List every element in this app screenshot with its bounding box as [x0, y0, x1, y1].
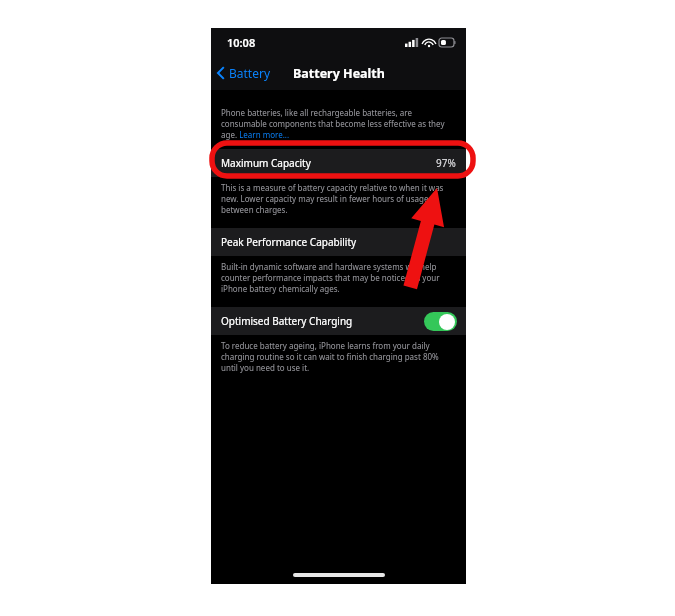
- staticText: Battery Health: [293, 65, 385, 82]
- button[interactable]: Optimised Battery Charging: [211, 307, 466, 335]
- staticText: Built-in dynamic software and hardware s…: [221, 261, 456, 294]
- button[interactable]: Peak Performance Capability: [211, 228, 466, 256]
- staticText: Maximum Capacity: [221, 156, 311, 170]
- button[interactable]: Optimised Battery Charging toggle: [424, 312, 457, 331]
- staticText: Optimised Battery Charging: [221, 314, 353, 328]
- button[interactable]: Battery: [211, 61, 279, 85]
- staticText: Peak Performance Capability: [221, 235, 357, 249]
- staticText: 10:08: [227, 35, 256, 50]
- staticText: To reduce battery ageing, iPhone learns …: [221, 340, 456, 373]
- staticText: This is a measure of battery capacity re…: [221, 182, 456, 215]
- button[interactable]: Maximum Capacity: [211, 149, 466, 177]
- staticText: 97%: [436, 156, 456, 170]
- staticText: Phone batteries, like all rechargeable b…: [221, 107, 456, 140]
- staticText: Battery: [229, 65, 271, 81]
